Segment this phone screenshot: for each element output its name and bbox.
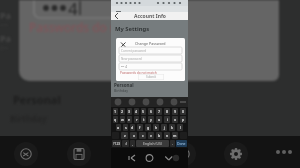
button[interactable]: Current password (119, 47, 182, 54)
button[interactable]: , (130, 140, 135, 147)
staticText: v (150, 133, 152, 138)
staticText: j (164, 125, 165, 130)
staticText: ••• 4 (121, 65, 127, 69)
button[interactable]: Settings (224, 142, 248, 166)
button[interactable]: s (123, 124, 128, 131)
staticText: English (US) (143, 141, 162, 146)
button[interactable]: v (148, 132, 154, 139)
button[interactable]: 6 (148, 108, 154, 115)
button[interactable]: f (137, 124, 143, 131)
button[interactable]: w (120, 116, 125, 123)
button[interactable]: e (127, 116, 132, 123)
button[interactable]: Undo (172, 142, 196, 166)
staticText: t (143, 117, 145, 122)
staticText: y (150, 117, 152, 122)
button[interactable]: u (156, 116, 162, 123)
button[interactable]: New password (119, 55, 182, 62)
staticText: q (114, 117, 117, 122)
button[interactable]: Submit (138, 74, 164, 80)
staticText: h (155, 125, 158, 130)
staticText: 6 (150, 109, 153, 114)
staticText: b (158, 133, 161, 138)
button[interactable]: a (116, 124, 121, 131)
button[interactable]: x (130, 132, 137, 139)
button[interactable]: r (134, 116, 139, 123)
staticText: My Settings (115, 25, 150, 33)
staticText: Pa (0, 9, 11, 21)
staticText: s (125, 125, 127, 130)
staticText: Pa (0, 32, 11, 44)
button[interactable]: Done (176, 140, 187, 147)
staticText: 8 (166, 109, 169, 114)
staticText: 5 (142, 109, 145, 114)
staticText: a (117, 125, 120, 130)
staticText: u (158, 117, 161, 122)
staticText: z (124, 133, 126, 138)
staticText: Passwords do not (29, 19, 129, 35)
staticText: Done (177, 141, 186, 146)
button[interactable]: b (156, 132, 162, 139)
button[interactable]: i (164, 116, 170, 123)
staticText: p (182, 117, 185, 122)
button[interactable]: ?123 (112, 140, 121, 147)
staticText: x (133, 133, 135, 138)
button[interactable]: 5 (141, 108, 146, 115)
button[interactable]: p (180, 116, 186, 123)
button[interactable]: k (169, 124, 175, 131)
staticText: 7 (158, 109, 161, 114)
button[interactable]: h (153, 124, 159, 131)
staticText: Birthday (114, 88, 128, 93)
button[interactable]: d (130, 124, 135, 131)
button[interactable]: More options (270, 140, 294, 164)
staticText: c (142, 133, 144, 138)
staticText: Personal (114, 82, 134, 88)
button[interactable]: :) (122, 140, 129, 147)
staticText: Personal (13, 92, 61, 107)
staticText: r (136, 117, 138, 122)
button[interactable]: ••• 4 (119, 63, 182, 70)
button[interactable]: m (172, 132, 178, 139)
button[interactable]: Save (67, 142, 91, 166)
staticText: Account Info (134, 13, 166, 20)
button[interactable]: Crop (14, 142, 38, 166)
staticText: 9 (174, 109, 177, 114)
button[interactable]: t (141, 116, 146, 123)
button[interactable]: 7 (156, 108, 162, 115)
button[interactable]: 8 (164, 108, 170, 115)
button[interactable]: l (177, 124, 183, 131)
staticText: Submit (146, 75, 157, 79)
staticText: g (147, 125, 150, 130)
staticText: . (172, 141, 173, 146)
button[interactable]: z (121, 132, 128, 139)
button[interactable]: 3 (127, 108, 132, 115)
button[interactable]: 4 (134, 108, 139, 115)
button[interactable]: g (145, 124, 151, 131)
button[interactable]: o (172, 116, 178, 123)
staticText: 1 (114, 109, 117, 114)
button[interactable]: n (164, 132, 170, 139)
button[interactable]: 2 (120, 108, 125, 115)
staticText: d (131, 125, 134, 130)
button[interactable]: c (139, 132, 146, 139)
staticText: New password (121, 57, 142, 61)
staticText: l (180, 125, 181, 130)
button[interactable]: 9 (172, 108, 178, 115)
button[interactable]: 1 (113, 108, 118, 115)
staticText: Passwords do not match (120, 71, 157, 75)
staticText: ?123 (113, 141, 121, 146)
button[interactable]: j (161, 124, 167, 131)
button[interactable]: y (148, 116, 154, 123)
staticText: f (139, 125, 141, 130)
staticText: e (128, 117, 131, 122)
button[interactable]: 0 (180, 108, 186, 115)
button[interactable]: English (US) (136, 140, 169, 147)
staticText: , (132, 141, 133, 146)
button[interactable]: . (170, 140, 175, 147)
staticText: 4 (135, 109, 138, 114)
staticText: w (121, 117, 124, 122)
button[interactable]: q (113, 116, 118, 123)
